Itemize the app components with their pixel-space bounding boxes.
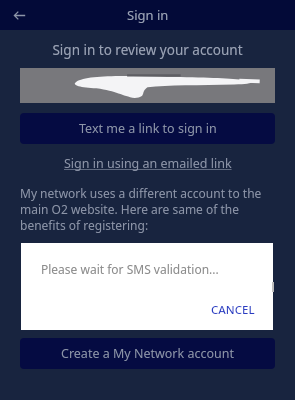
staticText: Create a My Network account (61, 345, 234, 362)
button[interactable]: Create a My Network account (20, 338, 275, 369)
button[interactable]: Text me a link to sign in (20, 113, 275, 144)
staticText: Sign in using an emailed link (64, 155, 232, 172)
staticText: Please wait for SMS validation... (41, 261, 219, 277)
staticText: Sign in (127, 6, 169, 24)
button[interactable]: Back (6, 2, 32, 28)
staticText: My network uses a different account to t… (20, 185, 275, 233)
button[interactable]: Sign in using an emailed link (0, 155, 295, 172)
button[interactable]: Phone number field (20, 68, 275, 103)
staticText: CANCEL (211, 302, 255, 318)
staticText: Sign in to review your account (16, 41, 279, 59)
staticText: Text me a link to sign in (79, 120, 217, 137)
button[interactable]: CANCEL (201, 296, 265, 324)
